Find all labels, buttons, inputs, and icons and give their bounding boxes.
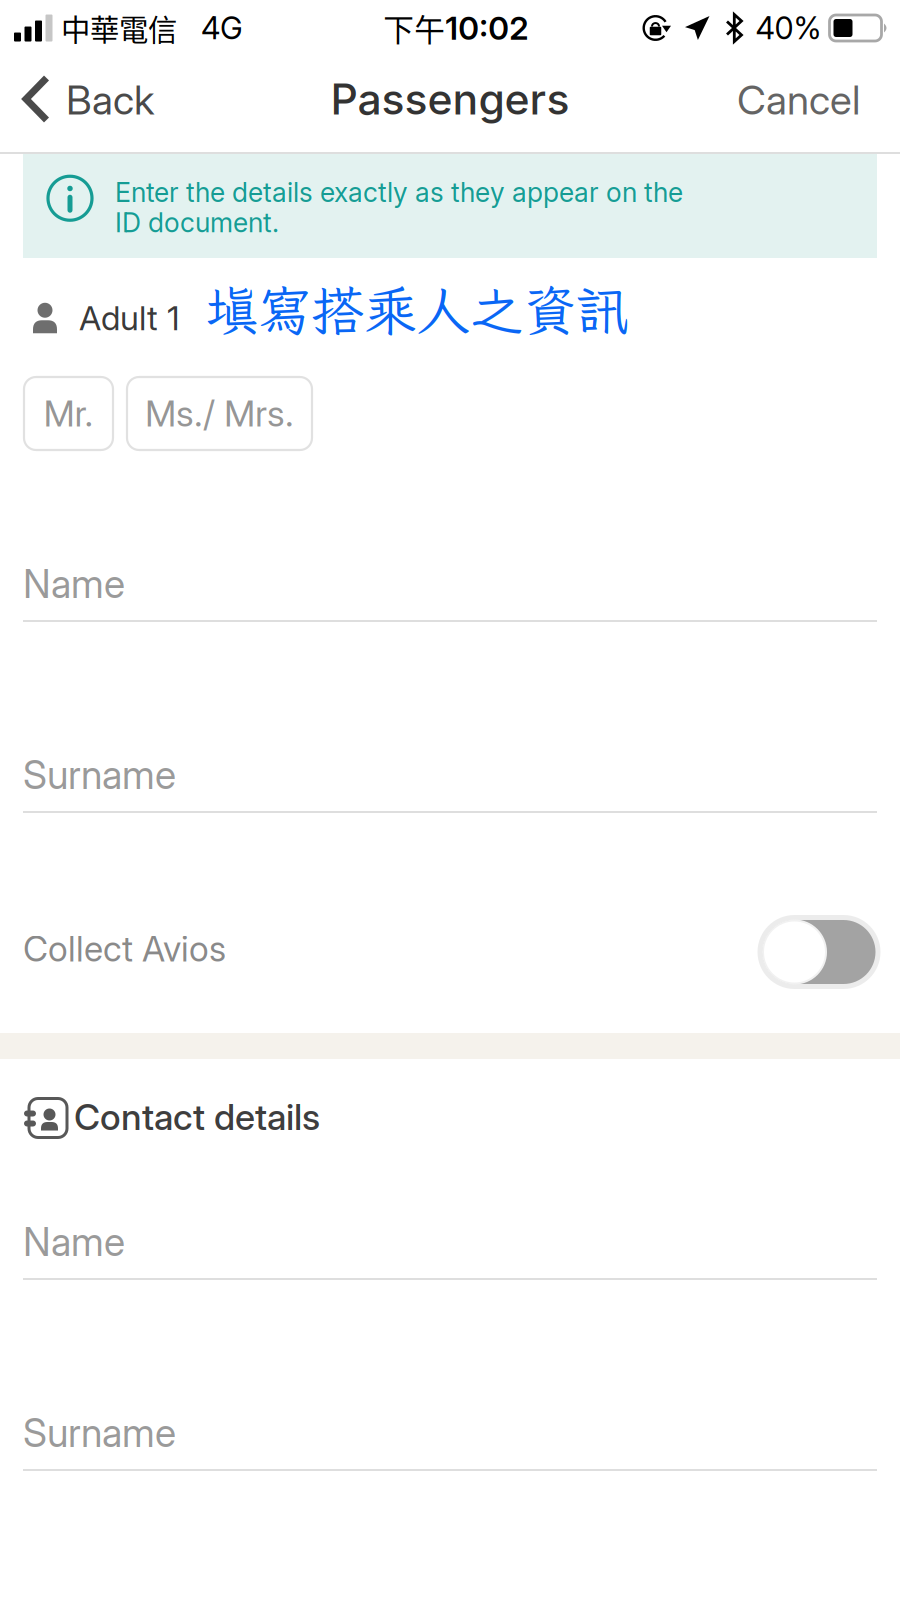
staticText: Surname (23, 1410, 176, 1456)
staticText: 10:02 (445, 9, 528, 47)
button[interactable]: Cancel (715, 64, 900, 144)
staticText: Cancel (737, 76, 860, 124)
staticText: Name (23, 1219, 125, 1265)
button[interactable]: Collect Avios (760, 917, 878, 986)
staticText: Back (66, 76, 154, 124)
staticText: Passengers (330, 73, 569, 125)
staticText: 中華電信 (61, 7, 177, 49)
staticText: 填寫搭乘人之資訊 (205, 275, 629, 345)
staticText: Adult 1 (79, 298, 180, 338)
staticText: 40% (755, 9, 821, 46)
staticText: Enter the details exactly as they appear… (115, 176, 683, 208)
staticText: Surname (23, 752, 176, 798)
staticText: 4G (201, 9, 243, 46)
button[interactable]: Mr. (24, 377, 113, 450)
staticText: Collect Avios (23, 928, 226, 970)
staticText: Mr. (43, 392, 93, 435)
button[interactable]: Back (0, 63, 176, 144)
button[interactable]: Ms./ Mrs. (127, 377, 312, 450)
staticText: Contact details (74, 1095, 320, 1139)
staticText: Ms./ Mrs. (145, 392, 294, 435)
staticText: ID document. (115, 206, 279, 239)
staticText: Name (23, 561, 125, 607)
staticText: 下午 (383, 6, 445, 50)
